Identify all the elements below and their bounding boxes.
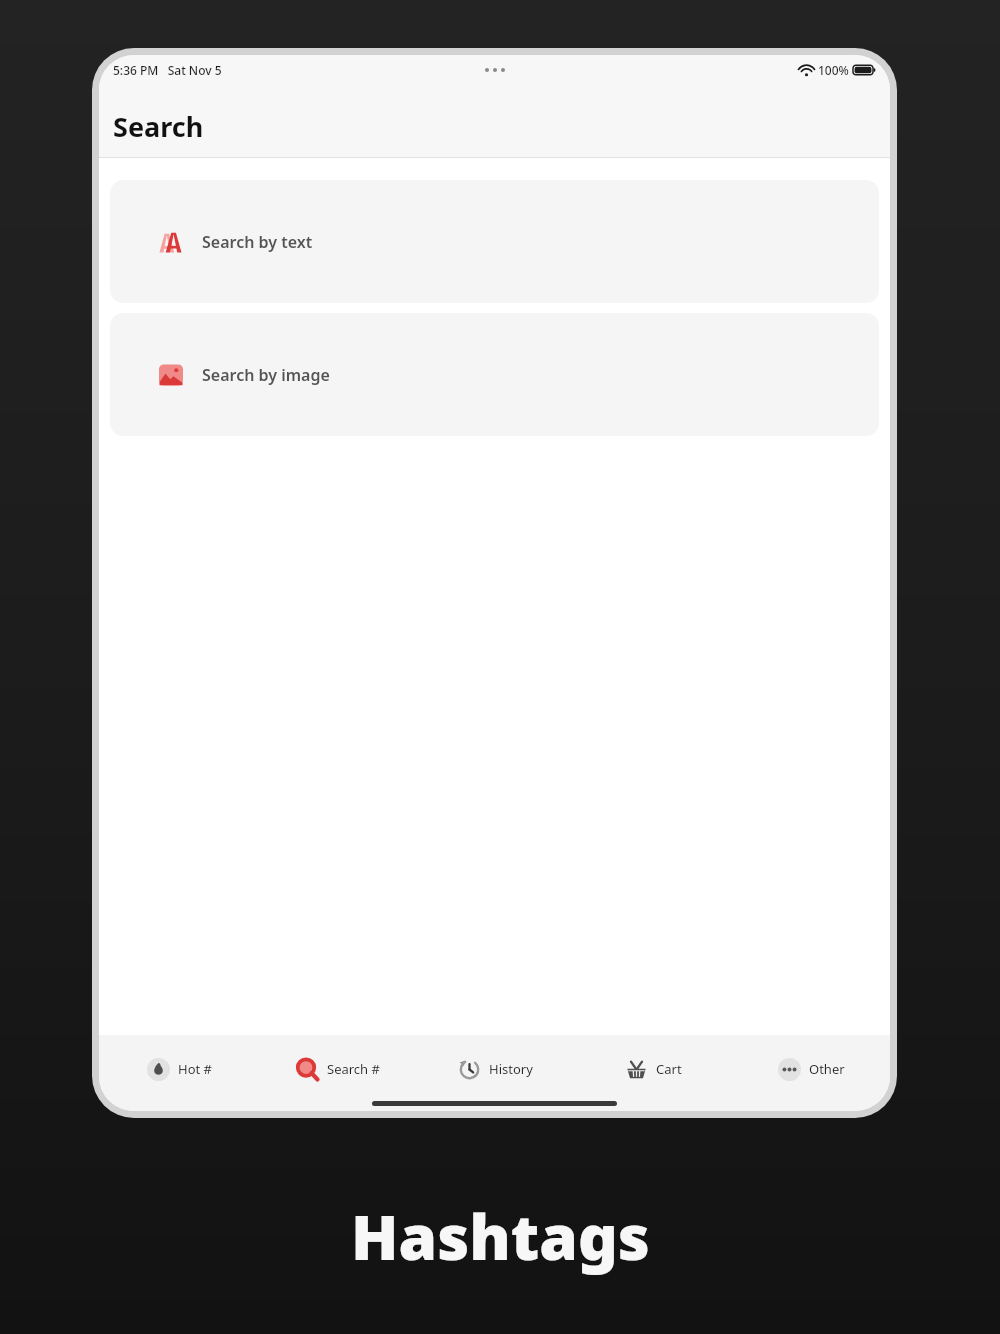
staticText: Hashtags (351, 1194, 650, 1278)
button[interactable]: Other (732, 1047, 890, 1091)
button[interactable]: Search by text (110, 180, 879, 303)
staticText: Search # (327, 1060, 380, 1078)
button[interactable]: Hot # (99, 1047, 258, 1091)
staticText: Hot # (178, 1060, 212, 1078)
staticText: History (489, 1060, 533, 1078)
button[interactable]: Search by image (110, 313, 879, 436)
staticText: Search by image (202, 364, 330, 386)
button[interactable]: History (416, 1047, 574, 1091)
staticText: Search (113, 108, 204, 145)
staticText: Cart (656, 1060, 682, 1078)
staticText: Search by text (202, 231, 313, 253)
staticText: 5:36 PM Sat Nov 5 (113, 62, 222, 78)
button[interactable]: Cart (574, 1047, 732, 1091)
staticText: 100% (818, 62, 849, 78)
button[interactable]: Search # (258, 1047, 416, 1091)
staticText: Other (809, 1060, 845, 1078)
